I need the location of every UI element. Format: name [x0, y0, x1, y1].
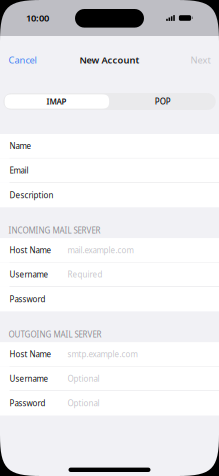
staticText: mail.example.com: [67, 245, 133, 255]
button[interactable]: Next: [182, 48, 219, 72]
staticText: Required: [67, 269, 102, 280]
button[interactable]: Cancel: [0, 48, 45, 72]
staticText: OUTGOING MAIL SERVER: [8, 329, 101, 340]
button[interactable]: Host Name: [0, 238, 219, 262]
staticText: IMAP: [46, 96, 66, 107]
staticText: Password: [9, 294, 45, 304]
button[interactable]: Password: [0, 287, 219, 311]
staticText: Optional: [67, 373, 99, 384]
staticText: smtp.example.com: [67, 349, 137, 359]
staticText: Optional: [67, 398, 99, 408]
button[interactable]: Username: [0, 262, 219, 287]
button[interactable]: Host Name: [0, 342, 219, 367]
staticText: Password: [9, 398, 45, 408]
button[interactable]: IMAP: [3, 93, 109, 110]
staticText: New Account: [79, 54, 139, 66]
button[interactable]: POP: [109, 93, 216, 110]
staticText: Cancel: [8, 54, 36, 66]
staticText: Host Name: [9, 349, 51, 359]
staticText: Email: [9, 165, 28, 176]
staticText: Username: [9, 269, 48, 280]
staticText: INCOMING MAIL SERVER: [8, 225, 100, 236]
staticText: POP: [155, 96, 171, 107]
button[interactable]: Email: [0, 158, 219, 183]
staticText: Description: [9, 190, 53, 200]
staticText: Username: [9, 373, 48, 384]
staticText: Next: [190, 54, 210, 66]
button[interactable]: Password: [0, 391, 219, 415]
button[interactable]: Username: [0, 367, 219, 391]
button[interactable]: Name: [0, 134, 219, 158]
staticText: 10:00: [26, 12, 49, 24]
staticText: Host Name: [9, 245, 51, 255]
button[interactable]: Description: [0, 183, 219, 207]
staticText: Name: [9, 141, 31, 151]
